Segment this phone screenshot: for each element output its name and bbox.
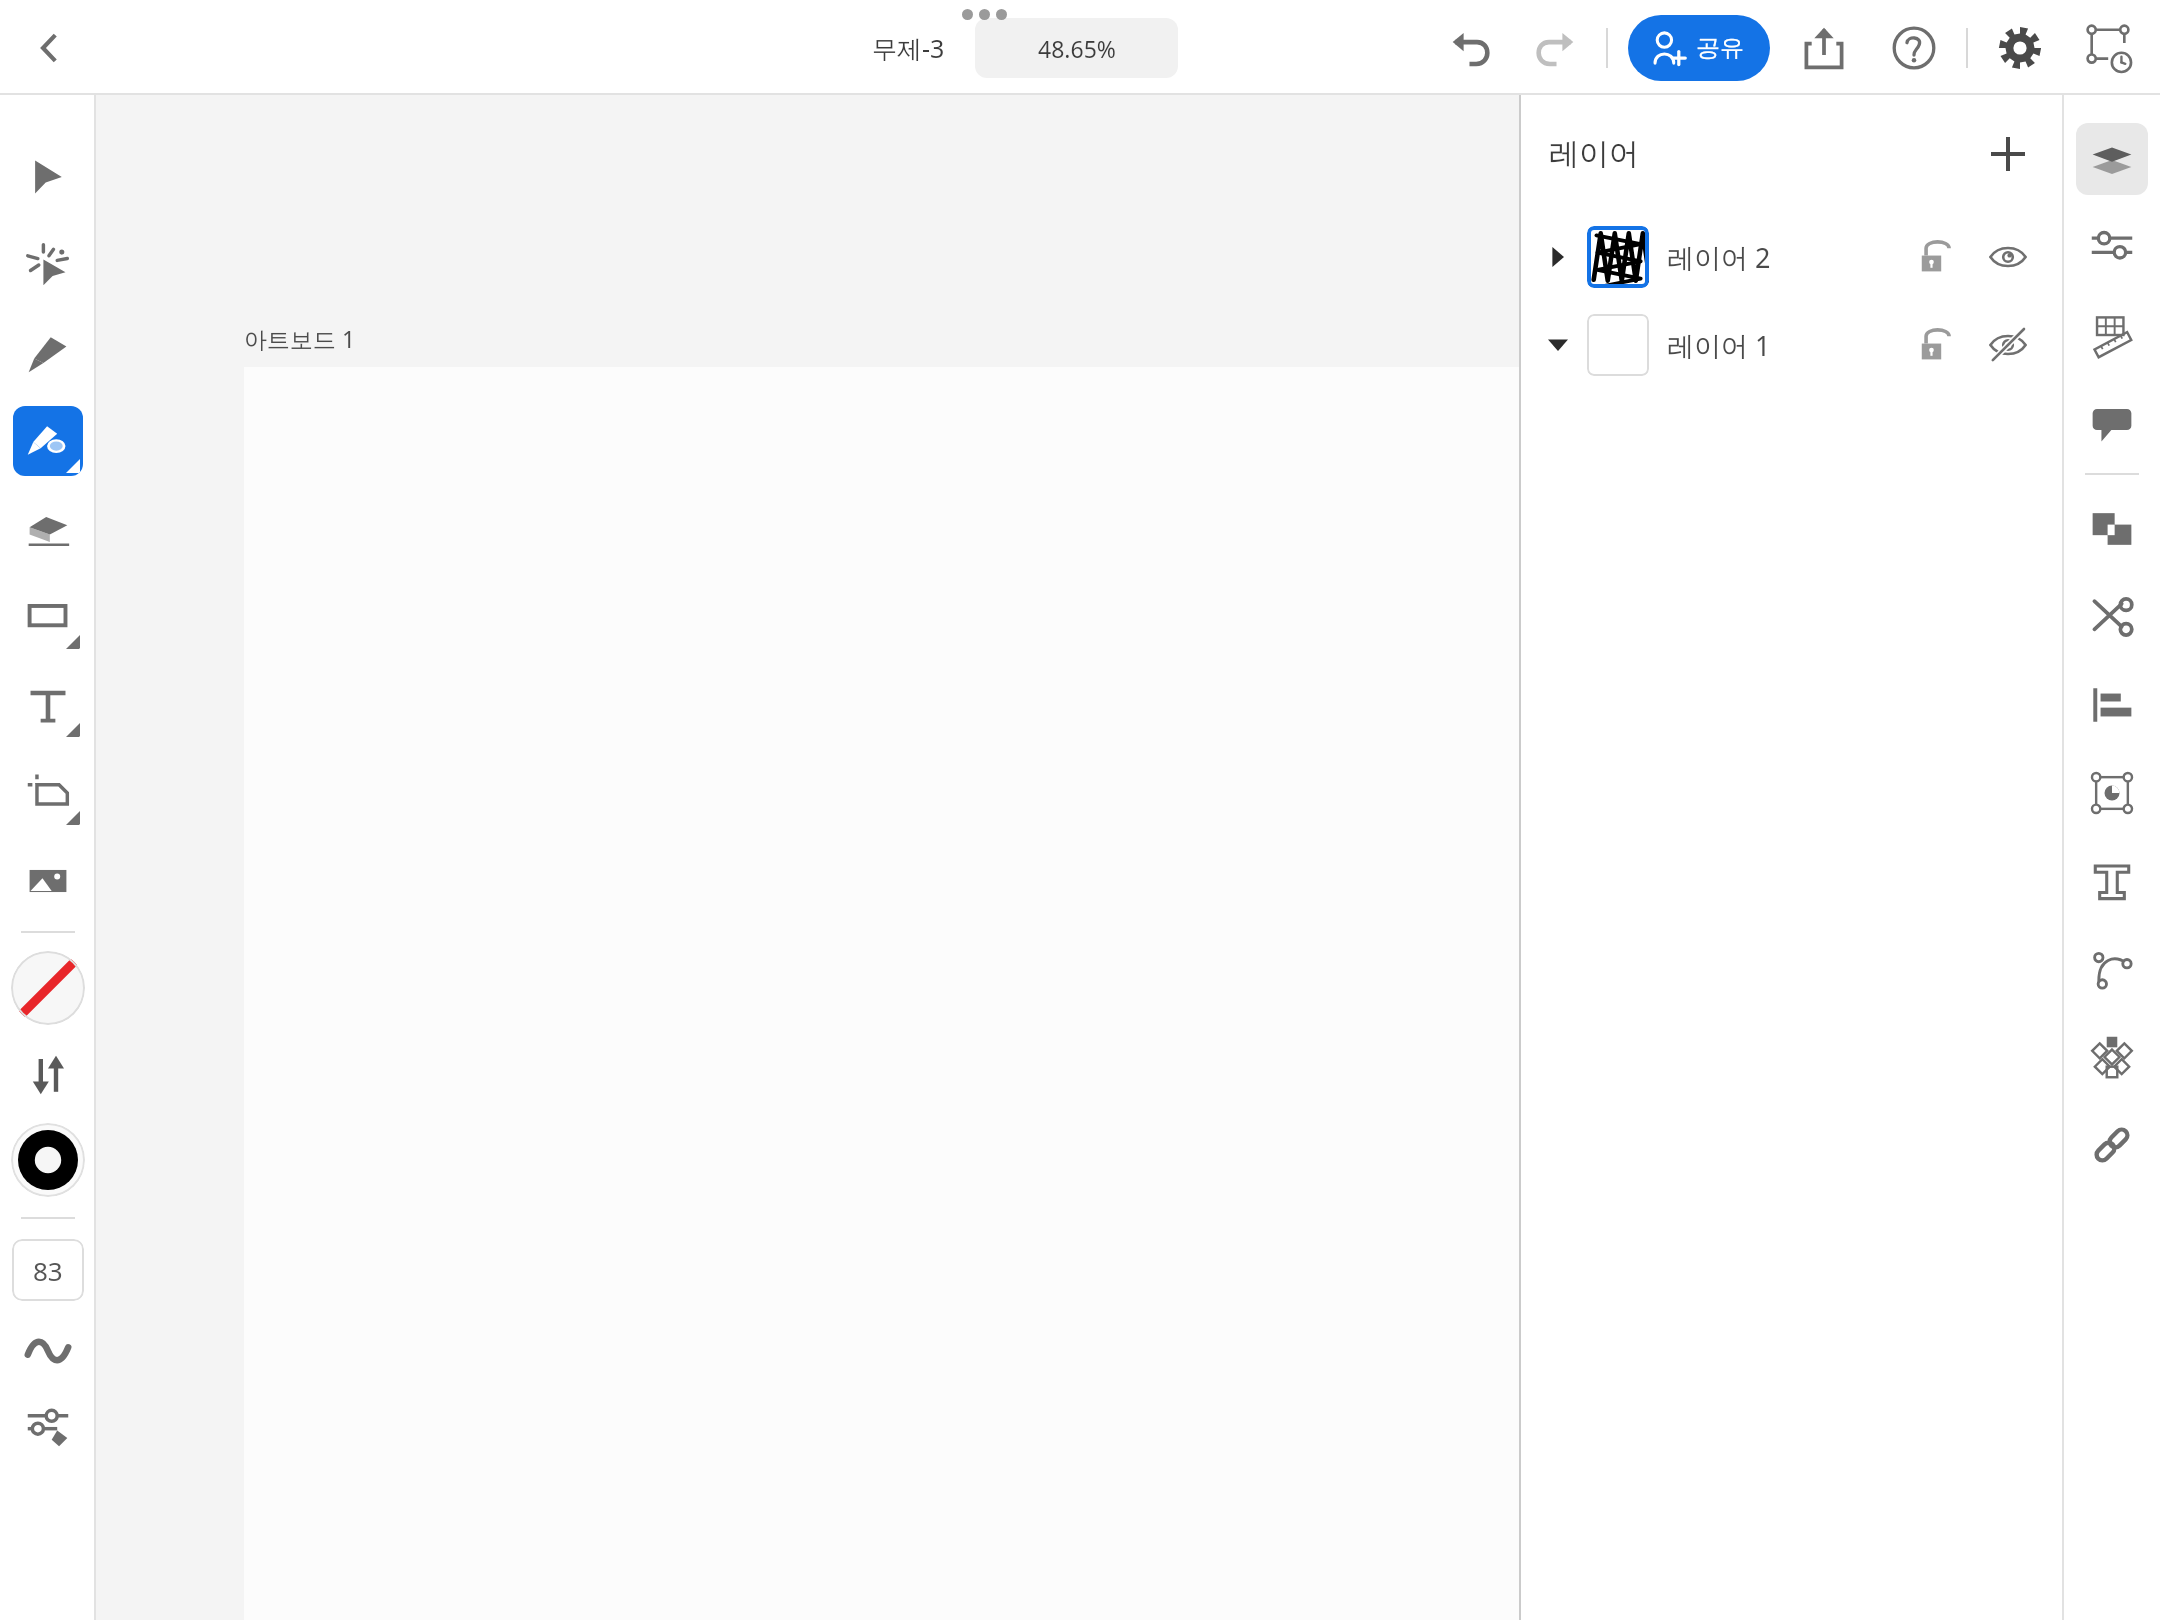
button[interactable]: Rulers <box>2076 299 2148 371</box>
button[interactable]: Smoothing <box>16 1319 80 1383</box>
button[interactable]: Version history <box>2076 16 2140 80</box>
button[interactable]: Artboard <box>13 758 83 828</box>
button[interactable]: Layers <box>2076 123 2148 195</box>
button[interactable]: Expand <box>1541 328 1575 362</box>
button[interactable]: Comments <box>2076 387 2148 459</box>
button[interactable]: Path <box>2076 933 2148 1005</box>
button[interactable]: Expand <box>1541 240 1575 274</box>
button[interactable]: 레이어 1 thumbnail <box>1587 314 1649 376</box>
button[interactable]: Export <box>1792 16 1856 80</box>
button[interactable]: Eraser <box>13 494 83 564</box>
button[interactable]: Back <box>18 17 80 79</box>
button[interactable]: Settings <box>1988 16 2052 80</box>
staticText: 83 <box>33 1253 63 1288</box>
button[interactable]: Select <box>13 142 83 212</box>
button[interactable]: Cut <box>2076 581 2148 653</box>
button[interactable]: Type <box>2076 845 2148 917</box>
button[interactable]: Brush <box>13 406 83 476</box>
button[interactable]: Direct select <box>13 230 83 300</box>
button[interactable]: Text <box>13 670 83 740</box>
button[interactable]: Shape <box>13 582 83 652</box>
button[interactable]: Visibility <box>1978 227 2038 287</box>
button[interactable]: Brush settings <box>16 1393 80 1457</box>
button[interactable]: Stroke color <box>11 1123 85 1197</box>
button[interactable]: Expand <box>1519 213 2064 301</box>
button[interactable]: Undo <box>1440 16 1504 80</box>
button[interactable]: Fill color <box>11 951 85 1025</box>
staticText: 레이어 1 <box>1667 327 1771 364</box>
button[interactable]: Redo <box>1522 16 1586 80</box>
button[interactable]: Properties <box>2076 211 2148 283</box>
button[interactable]: Pen <box>13 318 83 388</box>
button[interactable]: Visibility <box>1978 315 2038 375</box>
button[interactable]: 레이어 2 thumbnail <box>1587 226 1649 288</box>
button[interactable]: Expand <box>1519 301 2064 389</box>
button[interactable]: Link <box>2076 1109 2148 1181</box>
button[interactable]: Add layer <box>1976 122 2040 186</box>
button[interactable]: Lock <box>1904 315 1964 375</box>
button[interactable]: Image <box>13 846 83 916</box>
button[interactable]: Lock <box>1904 227 1964 287</box>
button[interactable]: 48.65% <box>975 18 1178 78</box>
button[interactable]: Duplicate <box>2076 493 2148 565</box>
staticText: 레이어 <box>1549 135 1639 173</box>
button[interactable]: Align <box>2076 669 2148 741</box>
button[interactable]: Transform <box>2076 757 2148 829</box>
button[interactable]: 83 <box>12 1239 84 1301</box>
button[interactable]: Help <box>1882 16 1946 80</box>
staticText: 아트보드 1 <box>244 323 356 354</box>
button[interactable]: 공유 <box>1628 15 1770 81</box>
staticText: 무제-3 <box>872 31 945 65</box>
button[interactable]: Repeat <box>2076 1021 2148 1093</box>
staticText: 레이어 2 <box>1667 239 1771 276</box>
button[interactable]: Swap fill and stroke <box>22 1049 74 1101</box>
staticText: 공유 <box>1696 33 1744 63</box>
staticText: 48.65% <box>1038 33 1116 64</box>
